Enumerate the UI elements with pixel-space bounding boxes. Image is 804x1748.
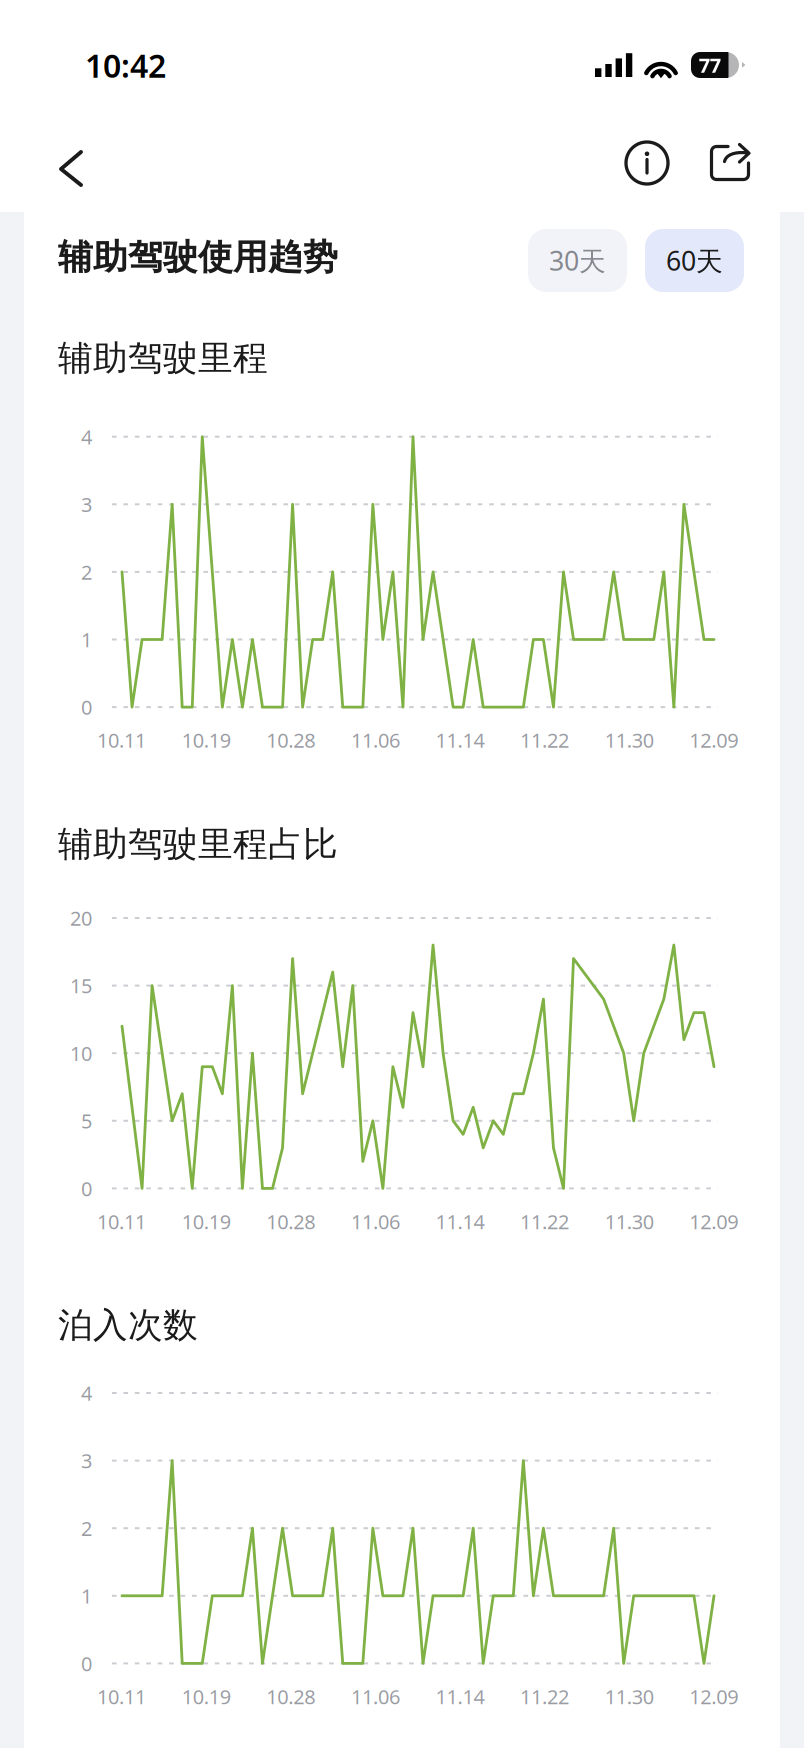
staticText: 11.30	[605, 1208, 654, 1235]
staticText: 0	[81, 1175, 92, 1202]
staticText: 77	[699, 52, 721, 78]
staticText: 10:42	[85, 44, 166, 86]
button[interactable]: 30天	[528, 229, 627, 292]
staticText: 10.28	[266, 1683, 315, 1710]
staticText: 11.14	[435, 1208, 484, 1235]
staticText: 11.06	[351, 727, 400, 753]
button[interactable]: Back	[36, 128, 108, 200]
staticText: 60天	[666, 243, 723, 278]
staticText: 辅助驾驶使用趋势	[58, 236, 338, 279]
staticText: 10.28	[266, 1208, 315, 1235]
staticText: 11.14	[435, 1683, 484, 1710]
staticText: 11.22	[520, 1683, 569, 1710]
button[interactable]: Info	[611, 127, 683, 199]
staticText: 10.19	[182, 1683, 231, 1710]
staticText: 11.30	[605, 1683, 654, 1710]
staticText: 10.28	[266, 727, 315, 753]
staticText: 10.11	[97, 1208, 146, 1235]
button[interactable]: 60天	[645, 229, 744, 292]
staticText: 1	[81, 1582, 92, 1609]
staticText: 11.22	[520, 727, 569, 753]
staticText: 10.19	[182, 1208, 231, 1235]
staticText: 5	[81, 1107, 92, 1134]
staticText: 4	[81, 423, 92, 450]
staticText: 12.09	[689, 1683, 738, 1710]
staticText: 泊入次数	[58, 1304, 198, 1347]
staticText: 3	[81, 491, 92, 518]
staticText: 11.14	[435, 727, 484, 753]
staticText: 11.22	[520, 1208, 569, 1235]
staticText: 20	[70, 905, 92, 931]
staticText: 2	[81, 559, 92, 585]
staticText: 11.30	[605, 727, 654, 753]
staticText: 10.11	[97, 1683, 146, 1710]
staticText: 1	[81, 626, 92, 653]
staticText: 11.06	[351, 1683, 400, 1710]
staticText: 10	[70, 1040, 92, 1066]
staticText: 2	[81, 1515, 92, 1541]
staticText: 辅助驾驶里程占比	[58, 823, 338, 866]
staticText: 10.19	[182, 727, 231, 753]
staticText: 11.06	[351, 1208, 400, 1235]
staticText: 辅助驾驶里程	[58, 337, 268, 380]
staticText: 12.09	[689, 1208, 738, 1235]
staticText: 30天	[549, 243, 606, 278]
staticText: 12.09	[689, 727, 738, 753]
staticText: 0	[81, 694, 92, 720]
staticText: 10.11	[97, 727, 146, 753]
staticText: 0	[81, 1650, 92, 1677]
staticText: 4	[81, 1380, 92, 1406]
staticText: 15	[70, 972, 92, 999]
button[interactable]: Share	[697, 130, 769, 202]
staticText: 3	[81, 1447, 92, 1474]
